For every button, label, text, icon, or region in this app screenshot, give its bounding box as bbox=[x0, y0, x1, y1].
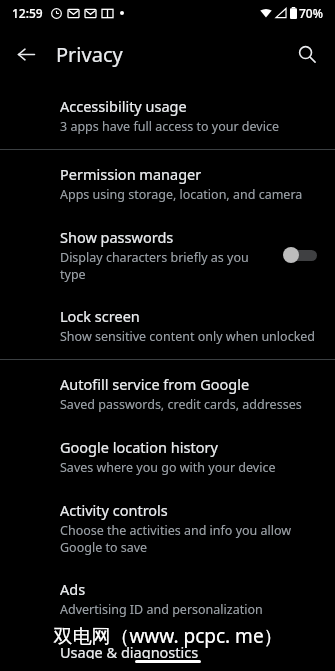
button[interactable]: Show passwords toggle bbox=[283, 244, 319, 266]
staticText: 70% bbox=[299, 5, 323, 21]
staticText: Ads bbox=[60, 579, 86, 599]
button[interactable]: Lock screen bbox=[0, 294, 335, 359]
button[interactable]: Google location history bbox=[0, 425, 335, 488]
button[interactable]: Permission manager bbox=[0, 150, 335, 215]
staticText: Display characters briefly as you type bbox=[60, 249, 273, 282]
button[interactable]: Autofill service from Google bbox=[0, 360, 335, 425]
staticText: Activity controls bbox=[60, 500, 168, 520]
staticText: 12:59 bbox=[12, 5, 43, 21]
button[interactable]: Back bbox=[4, 32, 48, 76]
staticText: Permission manager bbox=[60, 164, 202, 184]
staticText: Saved passwords, credit cards, addresses bbox=[60, 396, 302, 413]
staticText: Accessibility usage bbox=[60, 96, 187, 116]
staticText: Privacy bbox=[56, 41, 123, 68]
staticText: Autofill service from Google bbox=[60, 374, 250, 394]
button[interactable]: Accessibility usage bbox=[0, 86, 335, 149]
staticText: 双电网（www. pcpc. me） bbox=[53, 623, 283, 649]
staticText: Choose the activities and info you allow… bbox=[60, 522, 319, 555]
staticText: 3 apps have full access to your device bbox=[60, 118, 279, 135]
staticText: Saves where you go with your device bbox=[60, 459, 276, 476]
button[interactable]: Activity controls bbox=[0, 488, 335, 567]
button[interactable]: Ads bbox=[0, 567, 335, 630]
staticText: Lock screen bbox=[60, 306, 140, 326]
staticText: Google location history bbox=[60, 437, 218, 457]
button[interactable]: Usage & diagnostics bbox=[0, 630, 335, 671]
staticText: Usage & diagnostics bbox=[60, 642, 199, 659]
staticText: Advertising ID and personalization bbox=[60, 601, 263, 618]
button[interactable]: Search bbox=[285, 32, 329, 76]
staticText: Apps using storage, location, and camera bbox=[60, 186, 303, 203]
button[interactable]: Show passwords bbox=[0, 215, 335, 294]
staticText: Show sensitive content only when unlocke… bbox=[60, 328, 316, 345]
staticText: Show passwords bbox=[60, 227, 174, 247]
